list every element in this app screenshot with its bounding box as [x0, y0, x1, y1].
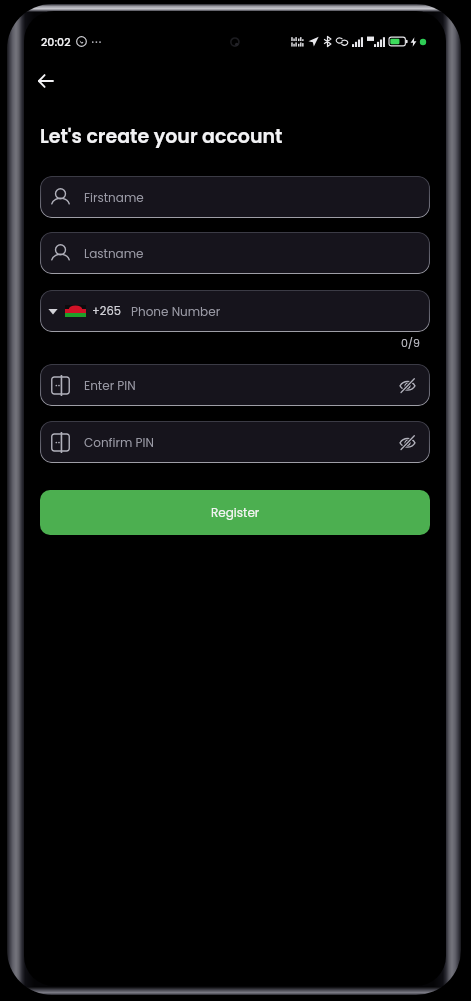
staticText: Register [211, 504, 260, 521]
staticText: Lastname [84, 245, 144, 262]
button[interactable]: Back [24, 59, 67, 103]
staticText: Enter PIN [84, 377, 136, 394]
staticText: 0/9 [24, 335, 420, 350]
button[interactable]: Enter PIN [40, 364, 430, 406]
button[interactable]: Lastname [40, 232, 430, 274]
staticText: 20:02 [41, 34, 71, 49]
button[interactable]: Register [40, 490, 430, 535]
button[interactable]: Firstname [40, 176, 430, 218]
staticText: Phone Number [131, 303, 221, 320]
staticText: Confirm PIN [84, 434, 154, 451]
button[interactable]: Show PIN [392, 370, 422, 400]
staticText: Let's create your account [40, 123, 283, 150]
button[interactable]: Confirm PIN [40, 421, 430, 463]
staticText: Firstname [84, 189, 144, 206]
staticText: +265 [92, 303, 121, 319]
button[interactable]: Show PIN [392, 427, 422, 457]
button[interactable]: +265 [40, 290, 430, 332]
